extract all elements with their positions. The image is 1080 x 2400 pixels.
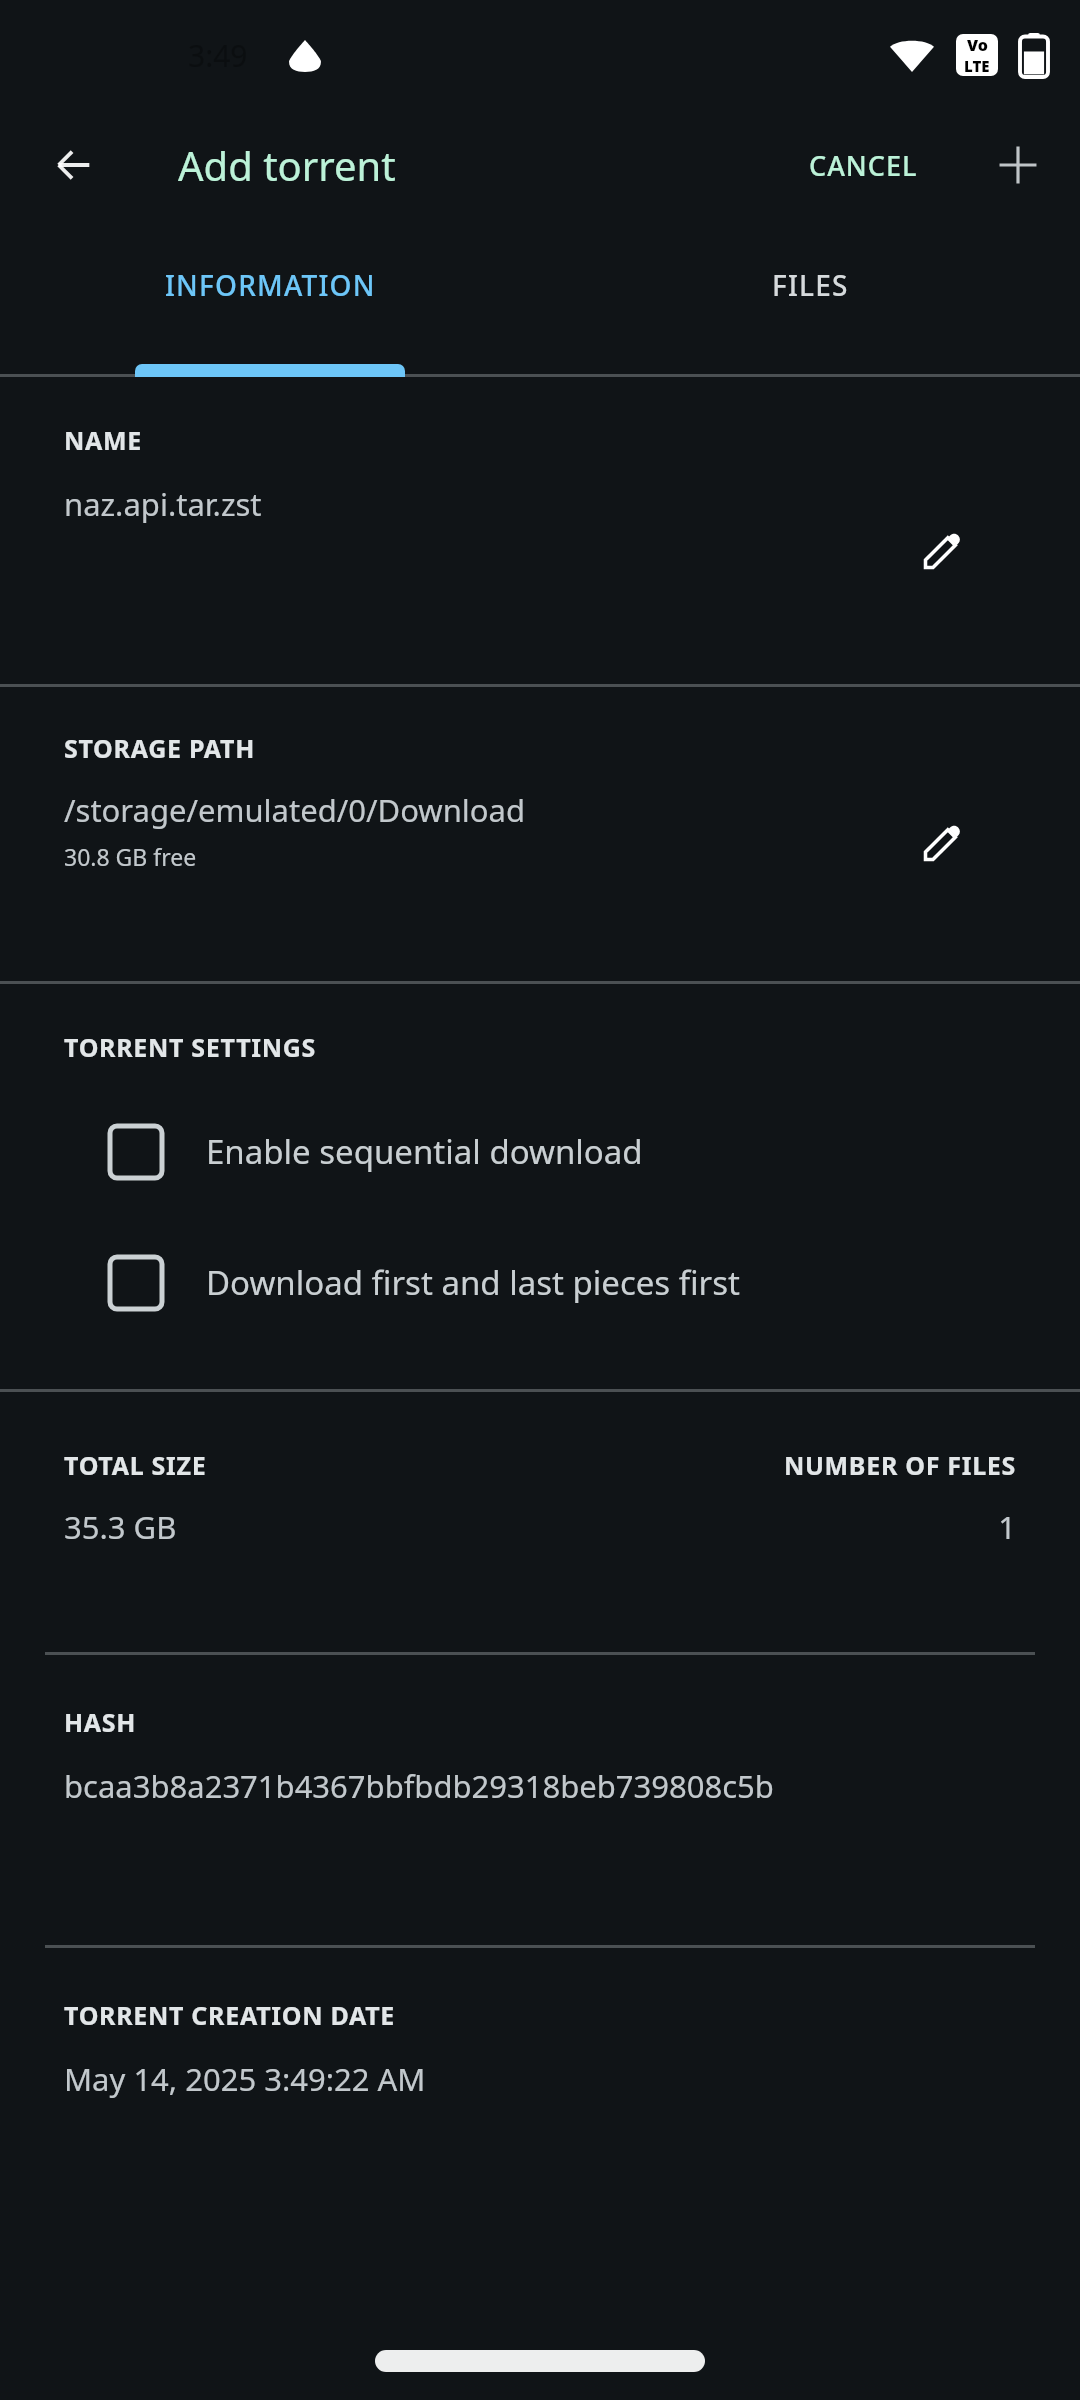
staticText: 1 [998,1506,1016,1548]
staticText: Add torrent [178,138,396,192]
button[interactable]: Download first and last pieces first [0,1217,1080,1348]
staticText: /storage/emulated/0/Download [64,789,526,831]
staticText: Enable sequential download [206,1129,643,1174]
staticText: FILES [772,266,849,304]
staticText: Vo [967,34,988,56]
button[interactable]: FILES [540,220,1080,377]
staticText: TORRENT SETTINGS [64,1030,317,1064]
staticText: bcaa3b8a2371b4367bbfbdb29318beb739808c5b [64,1765,774,1807]
staticText: Download first and last pieces first [206,1260,740,1305]
staticText: 35.3 GB [64,1506,177,1548]
other: Edit name [918,525,968,575]
staticText: INFORMATION [165,266,376,304]
staticText: naz.api.tar.zst [64,483,262,525]
other: Edit storage path [918,817,968,867]
button[interactable]: INFORMATION [0,220,540,377]
staticText: STORAGE PATH [64,731,256,765]
staticText: TORRENT CREATION DATE [64,1998,395,2032]
button[interactable]: Add [976,123,1060,207]
staticText: HASH [64,1705,137,1739]
staticText: TOTAL SIZE [64,1448,207,1482]
button[interactable]: STORAGE PATH [0,687,1080,981]
staticText: May 14, 2025 3:49:22 AM [64,2058,426,2100]
button[interactable]: Enable sequential download [0,1086,1080,1217]
staticText: 30.8 GB free [64,841,197,872]
staticText: CANCEL [809,147,918,184]
staticText: NAME [64,423,143,457]
staticText: LTE [964,56,990,76]
staticText: NUMBER OF FILES [783,1448,1016,1482]
button[interactable]: CANCEL [797,133,930,198]
button[interactable]: NAME [0,377,1080,684]
button[interactable]: Back [32,123,116,207]
